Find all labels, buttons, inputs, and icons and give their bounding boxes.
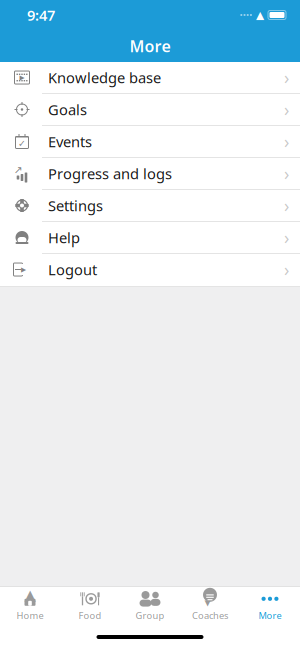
button[interactable]: Food bbox=[60, 587, 120, 625]
staticText: ▲ bbox=[24, 586, 35, 603]
button[interactable]: ↗ bbox=[0, 158, 300, 190]
staticText: ▶ bbox=[21, 266, 26, 273]
staticText: More bbox=[258, 609, 281, 622]
staticText: Home bbox=[16, 609, 43, 622]
staticText: › bbox=[284, 258, 289, 281]
button[interactable]: ▶ bbox=[0, 254, 300, 286]
staticText: Goals bbox=[48, 100, 87, 119]
staticText: Knowledge base bbox=[48, 68, 161, 87]
staticText: ▶ bbox=[19, 74, 24, 81]
staticText: › bbox=[284, 162, 289, 185]
staticText: › bbox=[284, 98, 289, 121]
staticText: Group bbox=[135, 609, 164, 622]
button[interactable]: Help bbox=[0, 222, 300, 254]
button[interactable]: More bbox=[240, 587, 300, 625]
staticText: › bbox=[284, 226, 289, 249]
staticText: Progress and logs bbox=[48, 164, 172, 183]
button[interactable]: ▼ bbox=[180, 587, 240, 625]
button[interactable]: Goals bbox=[0, 94, 300, 126]
staticText: More bbox=[129, 35, 170, 57]
button[interactable]: ▲ bbox=[0, 587, 60, 625]
staticText: ▼ bbox=[204, 598, 210, 607]
staticText: › bbox=[284, 130, 289, 153]
staticText: › bbox=[284, 194, 289, 217]
staticText: Food bbox=[78, 609, 101, 622]
button[interactable]: ▶ bbox=[0, 62, 300, 94]
button[interactable]: ✓ bbox=[0, 126, 300, 158]
staticText: Settings bbox=[48, 196, 103, 215]
button[interactable]: Group bbox=[120, 587, 180, 625]
staticText: › bbox=[284, 66, 289, 89]
button[interactable]: Settings bbox=[0, 190, 300, 222]
staticText: ✓ bbox=[18, 138, 26, 149]
staticText: Logout bbox=[48, 260, 97, 279]
staticText: ▲ bbox=[256, 9, 264, 21]
staticText: 9:47 bbox=[27, 5, 55, 25]
staticText: Coaches bbox=[192, 609, 228, 622]
staticText: Help bbox=[48, 228, 80, 247]
staticText: ↗ bbox=[13, 163, 22, 175]
staticText: Events bbox=[48, 132, 92, 151]
